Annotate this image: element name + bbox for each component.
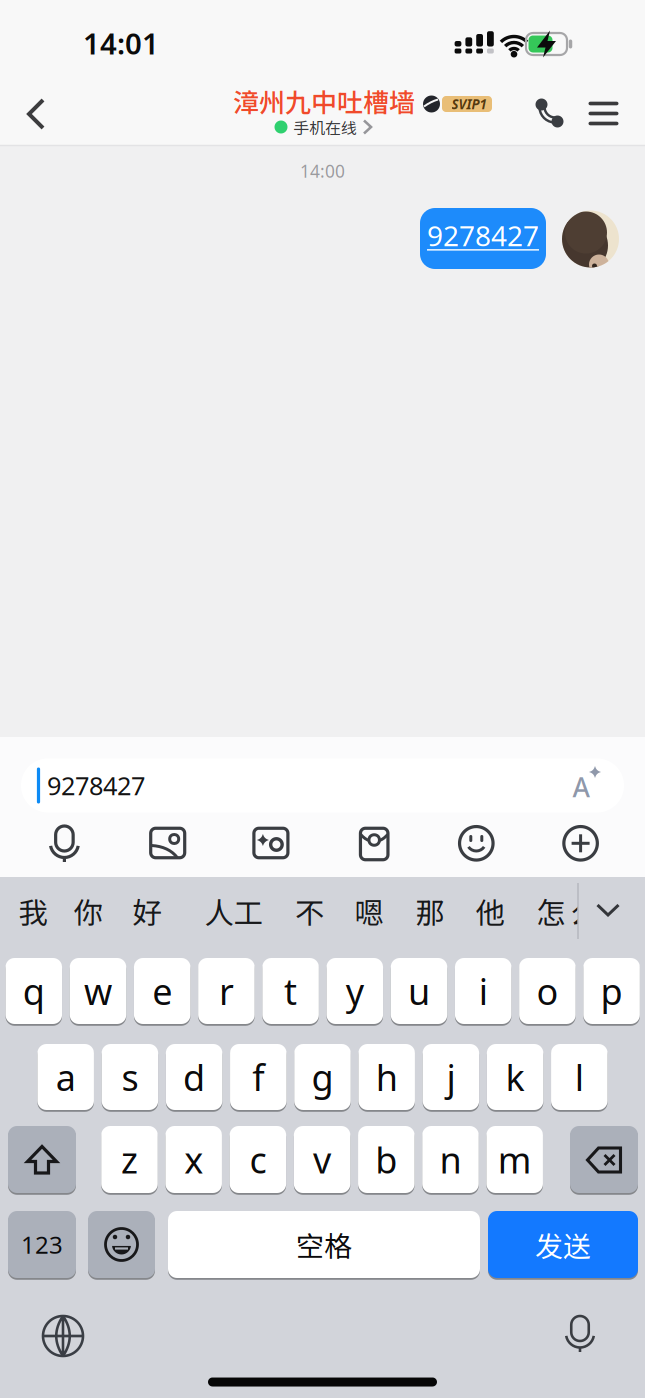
staticText: u — [408, 967, 430, 1015]
button[interactable]: Dictation — [563, 1315, 597, 1353]
button[interactable]: Back — [27, 98, 47, 130]
button[interactable]: i — [455, 957, 511, 1025]
button[interactable]: j — [423, 1043, 479, 1111]
staticText: 9278427 — [427, 217, 539, 254]
button[interactable]: Profile — [562, 210, 619, 267]
staticText: 漳州九中吐槽墙 — [233, 82, 415, 120]
button[interactable]: c — [230, 1125, 286, 1194]
button[interactable]: Call — [533, 96, 569, 132]
staticText: f — [252, 1053, 264, 1101]
button[interactable]: 发送 — [488, 1210, 638, 1279]
button[interactable]: k — [487, 1043, 543, 1111]
staticText: 手机在线 — [293, 115, 357, 139]
staticText: 不 — [295, 890, 324, 932]
button[interactable]: Shift — [8, 1125, 76, 1194]
button[interactable]: t — [262, 957, 319, 1025]
staticText: t — [284, 967, 297, 1015]
button[interactable]: Photos — [149, 827, 187, 861]
staticText: m — [498, 1136, 532, 1183]
button[interactable]: Red packet — [358, 826, 390, 862]
button[interactable]: 好 — [132, 890, 161, 932]
staticText: h — [376, 1053, 398, 1101]
button[interactable]: Delete — [570, 1125, 638, 1194]
button[interactable]: e — [134, 957, 190, 1025]
staticText: a — [56, 1053, 76, 1101]
button[interactable]: Menu — [588, 101, 618, 126]
staticText: j — [446, 1053, 455, 1101]
button[interactable]: z — [101, 1125, 158, 1194]
button[interactable]: Emoji — [458, 826, 494, 862]
button[interactable]: Chat details — [214, 89, 494, 145]
button[interactable]: h — [358, 1043, 415, 1111]
button[interactable]: g — [294, 1043, 351, 1111]
staticText: 那 — [415, 890, 444, 932]
button[interactable]: x — [165, 1125, 222, 1194]
staticText: 我 — [18, 890, 47, 932]
button[interactable]: Voice message — [47, 825, 81, 863]
button[interactable]: f — [230, 1043, 287, 1111]
staticText: 空格 — [296, 1224, 352, 1265]
staticText: 9278427 — [47, 769, 145, 802]
staticText: e — [152, 967, 172, 1015]
button[interactable]: 人工 — [204, 890, 262, 932]
staticText: 么 — [570, 890, 599, 932]
staticText: 14:00 — [300, 159, 345, 182]
button[interactable]: Next keyboard — [42, 1315, 84, 1357]
button[interactable]: l — [551, 1043, 608, 1111]
button[interactable]: 你 — [73, 890, 102, 932]
button[interactable]: 怎 — [536, 890, 565, 932]
staticText: g — [311, 1053, 333, 1101]
button[interactable]: AI polish — [564, 764, 604, 804]
button[interactable]: w — [70, 957, 126, 1025]
button[interactable]: Camera — [252, 827, 290, 861]
button[interactable]: y — [327, 957, 383, 1025]
staticText: 发送 — [535, 1224, 591, 1265]
button[interactable]: Hide keyboard — [595, 903, 620, 917]
staticText: l — [575, 1053, 584, 1101]
button[interactable]: Emoji keyboard — [88, 1210, 155, 1279]
button[interactable]: 123 — [8, 1210, 76, 1279]
button[interactable]: 9278427 — [420, 208, 546, 269]
staticText: o — [536, 967, 558, 1015]
button[interactable]: 不 — [295, 890, 324, 932]
staticText: v — [313, 1136, 331, 1183]
button[interactable]: n — [422, 1125, 479, 1194]
staticText: SVIP1 — [451, 95, 486, 113]
staticText: x — [184, 1136, 203, 1183]
button[interactable]: d — [166, 1043, 222, 1111]
staticText: z — [121, 1136, 138, 1183]
staticText: p — [601, 967, 623, 1015]
staticText: n — [439, 1136, 461, 1183]
button[interactable]: r — [198, 957, 255, 1025]
staticText: 123 — [21, 1229, 63, 1260]
staticText: b — [375, 1136, 397, 1183]
button[interactable]: b — [358, 1125, 415, 1194]
staticText: s — [121, 1053, 138, 1101]
button[interactable]: 他 — [475, 890, 504, 932]
staticText: d — [183, 1053, 205, 1101]
button[interactable]: u — [391, 957, 447, 1025]
staticText: 嗯 — [354, 890, 383, 932]
staticText: 你 — [73, 890, 102, 932]
staticText: q — [23, 967, 45, 1015]
staticText: w — [84, 967, 112, 1015]
button[interactable]: 空格 — [168, 1210, 480, 1279]
button[interactable]: s — [102, 1043, 158, 1111]
button[interactable]: v — [294, 1125, 350, 1194]
button[interactable]: More — [563, 826, 599, 862]
button[interactable]: o — [519, 957, 576, 1025]
staticText: 好 — [132, 890, 161, 932]
button[interactable]: Message field — [21, 758, 624, 812]
staticText: c — [249, 1136, 266, 1183]
button[interactable]: 我 — [18, 890, 47, 932]
staticText: 怎 — [536, 890, 565, 932]
button[interactable]: q — [5, 957, 62, 1025]
button[interactable]: 嗯 — [354, 890, 383, 932]
staticText: A — [572, 769, 589, 805]
staticText: 人工 — [204, 890, 262, 932]
button[interactable]: p — [583, 957, 640, 1025]
button[interactable]: a — [37, 1043, 94, 1111]
button[interactable]: 那 — [415, 890, 444, 932]
staticText: 他 — [475, 890, 504, 932]
button[interactable]: m — [486, 1125, 543, 1194]
